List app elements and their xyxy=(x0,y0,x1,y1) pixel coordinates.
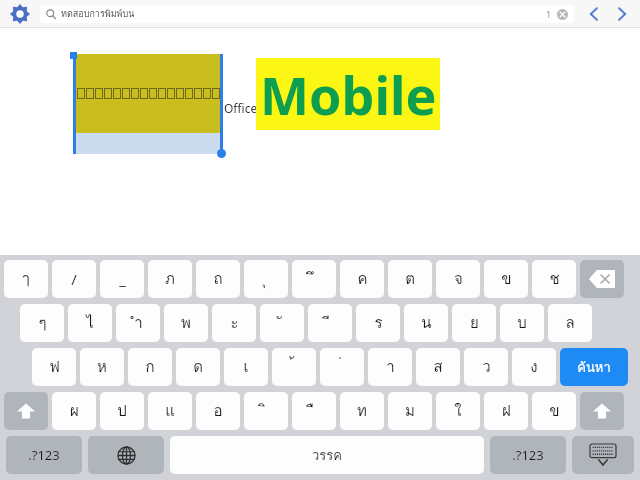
button[interactable]: ม xyxy=(388,392,432,430)
button[interactable]: Shift xyxy=(580,392,624,430)
staticText: วรรค xyxy=(312,445,342,466)
button[interactable]: ะ xyxy=(212,304,256,342)
button[interactable]: แ xyxy=(148,392,192,430)
button[interactable]: จ xyxy=(436,260,480,298)
staticText: ข xyxy=(501,267,512,291)
button[interactable]: .?123 xyxy=(6,436,82,474)
staticText: .?123 xyxy=(28,446,60,464)
staticText: ผ xyxy=(70,399,79,423)
button[interactable]: ข xyxy=(532,392,576,430)
button[interactable]: Clear xyxy=(557,9,568,20)
button[interactable]: .?123 xyxy=(490,436,566,474)
button[interactable]: ป xyxy=(100,392,144,430)
staticText: จ xyxy=(454,267,463,291)
button[interactable]: ุ xyxy=(244,260,288,298)
staticText: ว xyxy=(482,355,491,379)
button[interactable]: พ xyxy=(164,304,208,342)
staticText: ต xyxy=(405,267,415,291)
button[interactable]: ผ xyxy=(52,392,96,430)
button[interactable]: ี xyxy=(308,304,352,342)
button[interactable]: ล xyxy=(548,304,592,342)
button[interactable]: ถ xyxy=(196,260,240,298)
button[interactable]: _ xyxy=(100,260,144,298)
button[interactable]: วรรค xyxy=(170,436,484,474)
staticText: แ xyxy=(165,399,175,423)
button[interactable]: ฝ xyxy=(484,392,528,430)
button[interactable]: Next xyxy=(612,4,632,24)
button[interactable]: เ xyxy=(224,348,268,386)
staticText: พ xyxy=(181,311,191,335)
button[interactable]: อ xyxy=(196,392,240,430)
button[interactable]: ง xyxy=(512,348,556,386)
staticText: ร xyxy=(374,311,383,335)
button[interactable]: Backspace xyxy=(580,260,624,298)
button[interactable]: บ xyxy=(500,304,544,342)
button[interactable]: ช xyxy=(532,260,576,298)
button[interactable]: ย xyxy=(452,304,496,342)
button[interactable]: ทดสอบการพิมพ์บน xyxy=(40,5,574,23)
button[interactable]: ข xyxy=(484,260,528,298)
staticText: ค้นหา xyxy=(577,357,611,378)
button[interactable]: Hide keyboard xyxy=(572,436,634,474)
staticText: .?123 xyxy=(512,446,544,464)
staticText: ท xyxy=(357,399,367,423)
staticText: ห xyxy=(97,355,107,379)
button[interactable]: ๆ xyxy=(20,304,64,342)
staticText: น xyxy=(421,311,432,335)
staticText: ฟ xyxy=(49,355,60,379)
button[interactable]: Settings xyxy=(8,2,32,26)
staticText: ก xyxy=(145,355,155,379)
staticText: 1 xyxy=(546,8,552,20)
button[interactable]: ำ xyxy=(116,304,160,342)
button[interactable]: ห xyxy=(80,348,124,386)
button[interactable]: Mobile xyxy=(256,58,440,130)
button[interactable]: ภ xyxy=(148,260,192,298)
button[interactable]: ต xyxy=(388,260,432,298)
staticText: า xyxy=(386,355,395,379)
staticText: ภ xyxy=(165,267,175,291)
staticText: ล xyxy=(565,311,575,335)
staticText: Office xyxy=(224,100,258,116)
button[interactable]: ใ xyxy=(436,392,480,430)
staticText: อ xyxy=(213,399,223,423)
button[interactable]: / xyxy=(52,260,96,298)
button[interactable]: ึ xyxy=(292,260,336,298)
button[interactable]: ไ xyxy=(68,304,112,342)
staticText: / xyxy=(71,269,77,289)
staticText: ย xyxy=(470,311,479,335)
staticText: ำ xyxy=(134,311,143,335)
button[interactable]: ก xyxy=(128,348,172,386)
staticText: บ xyxy=(517,311,527,335)
button[interactable] xyxy=(76,54,220,133)
button[interactable]: ค xyxy=(340,260,384,298)
staticText: ฝ xyxy=(502,399,511,423)
button[interactable]: ส xyxy=(416,348,460,386)
staticText: ค xyxy=(357,267,368,291)
button[interactable]: Change keyboard language xyxy=(88,436,164,474)
staticText: Mobile xyxy=(260,59,437,130)
staticText: ช xyxy=(549,267,560,291)
button[interactable]: Previous xyxy=(584,4,604,24)
staticText: ข xyxy=(549,399,560,423)
staticText: ส xyxy=(433,355,443,379)
button[interactable]: น xyxy=(404,304,448,342)
button[interactable]: ฟ xyxy=(32,348,76,386)
button[interactable]: ่ xyxy=(320,348,364,386)
staticText: ถ xyxy=(213,267,223,291)
button[interactable]: ท xyxy=(340,392,384,430)
button[interactable]: ด xyxy=(176,348,220,386)
button[interactable]: ค้นหา xyxy=(560,348,628,386)
button[interactable]: ิ xyxy=(244,392,288,430)
button[interactable]: า xyxy=(368,348,412,386)
button[interactable]: ว xyxy=(464,348,508,386)
staticText: เ xyxy=(243,355,249,379)
button[interactable]: ร xyxy=(356,304,400,342)
staticText: ะ xyxy=(230,311,239,335)
button[interactable]: ื xyxy=(292,392,336,430)
staticText: ง xyxy=(530,355,538,379)
button[interactable]: Shift xyxy=(4,392,48,430)
button[interactable]: ๅ xyxy=(4,260,48,298)
button[interactable]: ้ xyxy=(272,348,316,386)
button[interactable]: ั xyxy=(260,304,304,342)
staticText: ด xyxy=(193,355,203,379)
